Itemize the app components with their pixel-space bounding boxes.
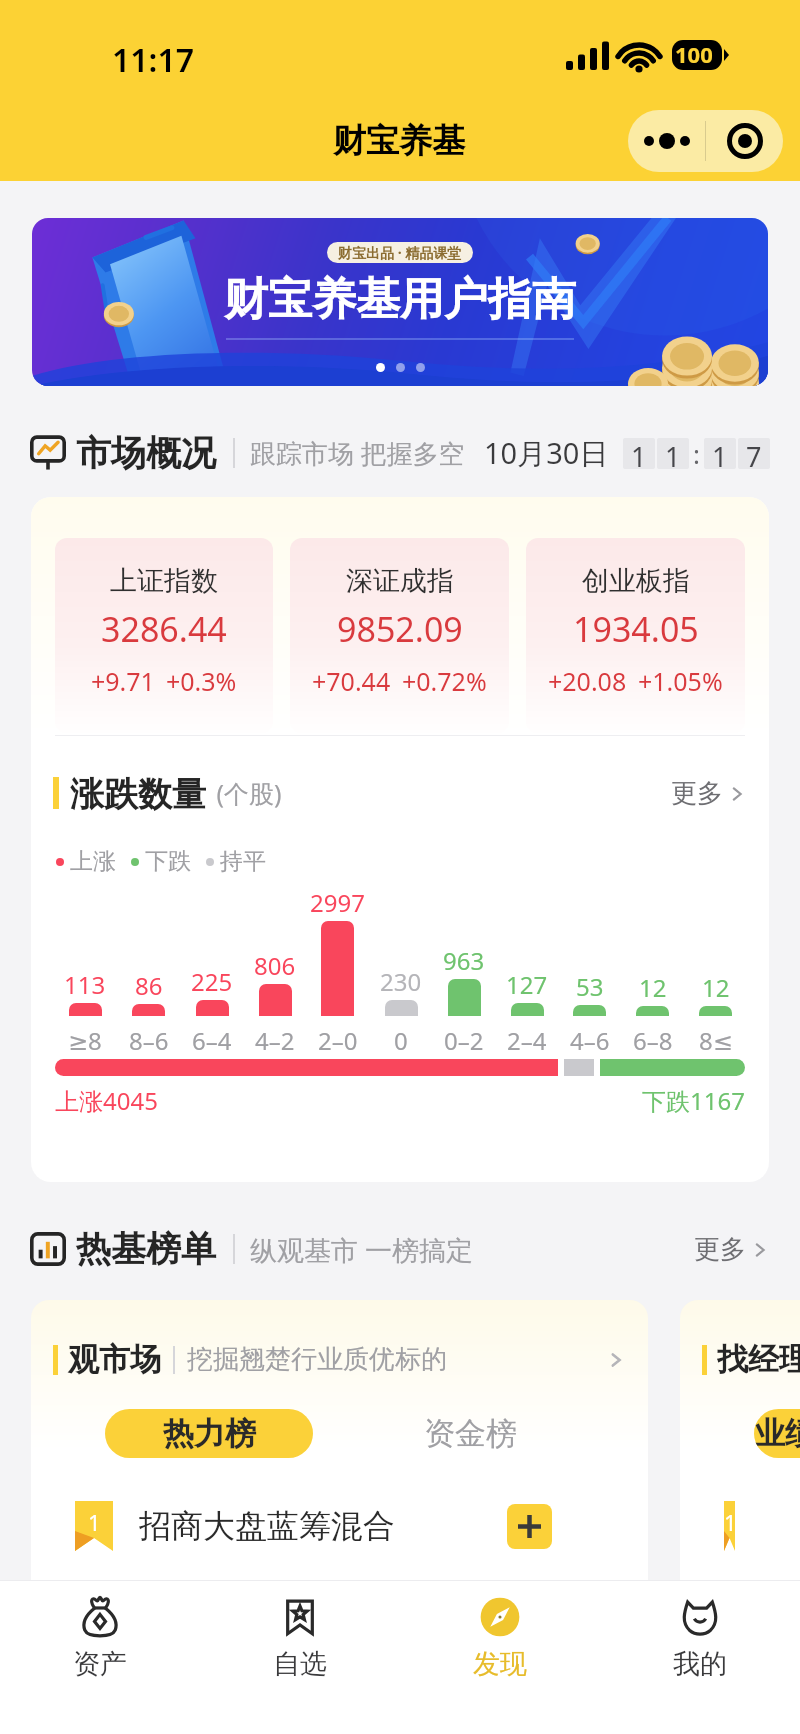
staticText: 12 (702, 971, 730, 1004)
staticText: 1 (724, 1507, 735, 1537)
staticText: 6–4 (192, 1024, 232, 1057)
staticText: 0–2 (444, 1024, 484, 1057)
staticText: 资金榜 (424, 1414, 517, 1453)
staticText: 涨跌数量 (70, 773, 206, 813)
staticText: 113 (64, 968, 106, 1001)
staticText: 127 (506, 968, 548, 1001)
staticText: 0 (394, 1024, 408, 1057)
staticText: 业绩榜 (754, 1414, 800, 1453)
staticText: (个股) (210, 776, 282, 810)
button[interactable]: 1 (724, 1501, 735, 1551)
staticText: 深证成指 (346, 564, 454, 598)
staticText: 下跌 (145, 847, 191, 876)
button[interactable]: 深证成指 (290, 538, 509, 733)
staticText: 1 (88, 1507, 101, 1537)
staticText: 4–2 (255, 1024, 295, 1057)
staticText: 下跌1167 (642, 1084, 745, 1117)
staticText: +0.3% (166, 664, 237, 698)
staticText: : (693, 436, 700, 471)
staticText: 挖掘翘楚行业质优标的 (187, 1343, 447, 1376)
staticText: 找经理 (717, 1340, 800, 1379)
staticText: 12 (639, 971, 667, 1004)
button[interactable]: 更多 (671, 777, 747, 810)
staticText: 6–8 (633, 1024, 673, 1057)
staticText: 963 (443, 944, 485, 977)
button[interactable]: 1 (75, 1501, 552, 1551)
staticText: 创业板指 (582, 564, 690, 598)
button[interactable]: 资金榜 (370, 1409, 570, 1458)
staticText: +70.44 (312, 664, 391, 698)
other: Banner page indicator (376, 363, 425, 372)
staticText: 财宝出品 · 精品课堂 (338, 243, 462, 262)
staticText: 资产 (73, 1647, 127, 1681)
button[interactable]: 发现 (400, 1581, 600, 1734)
button[interactable]: 找经理 (702, 1340, 800, 1379)
staticText: 上涨4045 (55, 1084, 158, 1117)
staticText: +0.72% (402, 664, 487, 698)
staticText: 11:17 (112, 38, 195, 82)
staticText: 225 (191, 965, 233, 998)
button[interactable]: 我的 (600, 1581, 800, 1734)
staticText: 1 (665, 438, 681, 469)
staticText: 806 (254, 949, 296, 982)
staticText: 更多 (694, 1233, 746, 1266)
staticText: 10月30日 (484, 433, 609, 473)
staticText: 招商大盘蓝筹混合 (139, 1506, 395, 1546)
staticText: 持平 (220, 847, 266, 876)
staticText: 8–6 (129, 1024, 169, 1057)
staticText: 更多 (671, 777, 723, 810)
staticText: 2–4 (507, 1024, 547, 1057)
button[interactable]: 更多 (694, 1233, 770, 1266)
button[interactable]: Close mini program (706, 110, 783, 172)
staticText: 自选 (273, 1647, 327, 1681)
staticText: 4–6 (570, 1024, 610, 1057)
button[interactable]: 观市场 (53, 1340, 626, 1379)
staticText: 热基榜单 (76, 1227, 216, 1271)
staticText: 跟踪市场 把握多空 (250, 435, 465, 471)
button[interactable]: 业绩榜 (754, 1409, 800, 1458)
staticText: 我的 (673, 1647, 727, 1681)
staticText: 230 (380, 965, 422, 998)
staticText: 9852.09 (337, 606, 463, 652)
staticText: +20.08 (548, 664, 627, 698)
staticText: 上涨 (70, 847, 116, 876)
staticText: 2997 (310, 886, 365, 919)
staticText: +9.71 (91, 664, 155, 698)
staticText: 2–0 (318, 1024, 358, 1057)
staticText: 热力榜 (163, 1414, 256, 1453)
staticText: 上证指数 (110, 564, 218, 598)
staticText: 1 (631, 438, 647, 469)
staticText: +1.05% (638, 664, 723, 698)
button[interactable]: 财宝出品 · 精品课堂 (32, 218, 768, 386)
staticText: 发现 (473, 1647, 527, 1681)
staticText: 纵观基市 一榜搞定 (250, 1231, 474, 1268)
staticText: 市场概况 (76, 431, 216, 475)
button[interactable]: 上证指数 (55, 538, 273, 733)
staticText: 7 (746, 438, 762, 469)
button[interactable]: More options (628, 110, 705, 172)
staticText: 观市场 (68, 1340, 161, 1379)
staticText: 100 (675, 39, 713, 69)
staticText: 3286.44 (101, 606, 227, 652)
button[interactable]: Add to watchlist (507, 1504, 552, 1549)
staticText: 53 (576, 970, 604, 1003)
staticText: ≥8 (68, 1024, 102, 1057)
button[interactable]: 热力榜 (105, 1409, 313, 1458)
staticText: 财宝养基 (333, 120, 465, 162)
staticText: 1934.05 (573, 606, 699, 652)
button[interactable]: 自选 (200, 1581, 400, 1734)
staticText: 86 (135, 969, 163, 1002)
staticText: 8≤ (699, 1024, 733, 1057)
staticText: 1 (712, 438, 728, 469)
staticText: 财宝养基用户指南 (224, 272, 576, 327)
button[interactable]: 创业板指 (526, 538, 745, 733)
button[interactable]: 资产 (0, 1581, 200, 1734)
